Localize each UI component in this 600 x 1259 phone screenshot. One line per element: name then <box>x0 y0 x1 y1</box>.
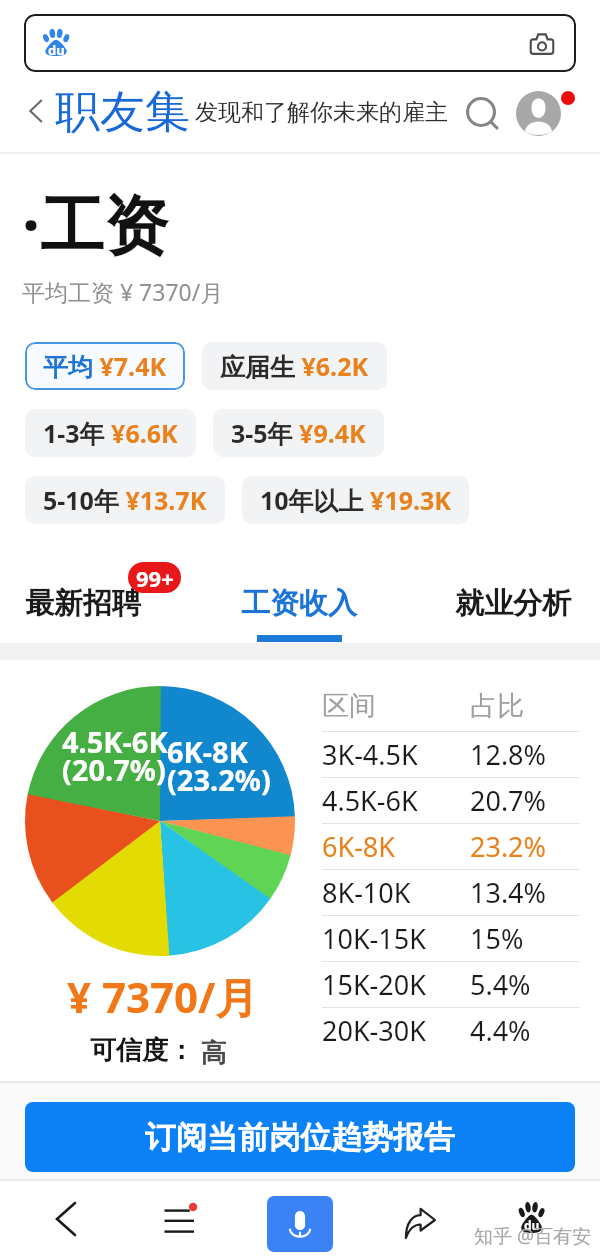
button[interactable]: du <box>24 14 576 72</box>
button[interactable]: 3-5年 ¥9.4K <box>213 409 384 457</box>
staticText: du <box>524 1217 540 1233</box>
staticText: 就业分析 <box>455 585 571 622</box>
button[interactable]: 3K-4.5K <box>322 732 580 777</box>
staticText: 3K-4.5K <box>322 736 470 773</box>
staticText: 应届生 ¥6.2K <box>220 349 369 383</box>
button[interactable]: 15K-20K <box>322 962 580 1007</box>
staticText: du <box>48 41 65 59</box>
staticText: 6K-8K (23.2%) <box>167 732 271 799</box>
staticText: 知乎 @百有安 <box>474 1223 592 1249</box>
button[interactable]: 1-3年 ¥6.6K <box>25 409 196 457</box>
staticText: 高 <box>194 1034 227 1070</box>
button[interactable]: 4.5K-6K <box>322 778 580 823</box>
staticText: 5.4% <box>470 966 531 1003</box>
button[interactable]: 20K-30K <box>322 1008 580 1053</box>
button[interactable]: Back <box>40 1193 92 1245</box>
button[interactable]: 10年以上 ¥19.3K <box>242 476 469 524</box>
staticText: 可信度： <box>90 1034 194 1067</box>
button[interactable]: Back <box>18 93 54 129</box>
staticText: 平均 ¥7.4K <box>43 349 167 383</box>
staticText: 1-3年 ¥6.6K <box>43 416 178 450</box>
button[interactable]: 8K-10K <box>322 870 580 915</box>
staticText: 订阅当前岗位趋势报告 <box>145 1118 455 1157</box>
button[interactable]: Voice search <box>267 1196 333 1252</box>
button[interactable]: 10K-15K <box>322 916 580 961</box>
staticText: 8K-10K <box>322 874 470 911</box>
staticText: 12.8% <box>470 736 547 773</box>
button[interactable]: 应届生 ¥6.2K <box>202 342 387 390</box>
button[interactable]: Search <box>459 90 503 134</box>
button[interactable]: 6K-8K <box>322 824 580 869</box>
staticText: ·工资 <box>22 180 168 267</box>
staticText: 3-5年 ¥9.4K <box>231 416 366 450</box>
button[interactable]: 职友集 <box>55 84 190 141</box>
button[interactable]: Baidu home <box>501 1188 561 1248</box>
staticText: 工资收入 <box>241 585 357 622</box>
staticText: 20K-30K <box>322 1012 470 1049</box>
staticText: ¥ 7370/月 <box>67 968 258 1025</box>
button[interactable]: Menu <box>153 1193 205 1245</box>
staticText: 6K-8K <box>322 828 470 865</box>
staticText: 23.2% <box>470 828 547 865</box>
other: Camera search <box>528 30 556 56</box>
staticText: 4.5K-6K (20.7%) <box>62 722 168 789</box>
staticText: 99+ <box>136 563 174 593</box>
button[interactable]: 5-10年 ¥13.7K <box>25 476 225 524</box>
staticText: 20.7% <box>470 782 547 819</box>
staticText: 4.4% <box>470 1012 531 1049</box>
staticText: 10K-15K <box>322 920 470 957</box>
button[interactable]: Share <box>405 1208 437 1240</box>
button[interactable]: 工资收入 <box>241 585 357 622</box>
button[interactable]: 最新招聘 <box>25 585 141 622</box>
button[interactable]: Profile <box>514 89 576 151</box>
button[interactable]: 就业分析 <box>455 585 571 622</box>
staticText: 区间 <box>322 689 470 723</box>
staticText: 平均工资 ¥ 7370/月 <box>22 276 224 307</box>
button[interactable]: 订阅当前岗位趋势报告 <box>25 1102 575 1172</box>
staticText: 10年以上 ¥19.3K <box>260 483 451 517</box>
staticText: 最新招聘 <box>25 585 141 622</box>
staticText: 15K-20K <box>322 966 470 1003</box>
staticText: 5-10年 ¥13.7K <box>43 483 207 517</box>
staticText: 4.5K-6K <box>322 782 470 819</box>
staticText: 发现和了解你未来的雇主 <box>195 98 448 127</box>
staticText: 占比 <box>470 689 524 723</box>
button[interactable]: 平均 ¥7.4K <box>25 342 185 390</box>
staticText: 15% <box>470 920 524 957</box>
staticText: 13.4% <box>470 874 547 911</box>
